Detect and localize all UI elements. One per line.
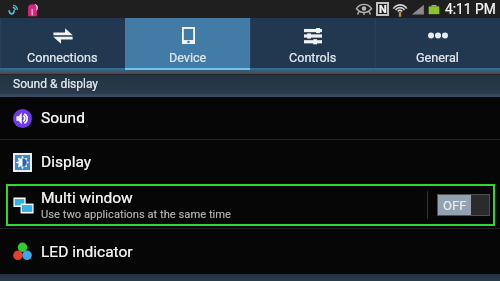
button[interactable]: Multi window [6,184,495,226]
staticText: Sound [41,109,85,127]
button[interactable]: Display [0,140,500,184]
staticText: General [416,50,459,65]
staticText: Connections [27,50,98,65]
staticText: OFF [443,198,467,213]
other: Controls tab [303,27,323,44]
button[interactable]: General tab [375,18,500,68]
staticText: Sound & display [13,77,99,91]
button[interactable]: Multi window off [437,194,490,216]
staticText: N [379,3,387,16]
button[interactable]: Device tab [125,18,250,68]
staticText: Display [41,153,92,171]
staticText: Multi window [41,189,133,207]
staticText: LED indicator [41,243,133,261]
other: General tab [428,27,448,44]
other: Connections tab [53,27,73,44]
other: Device tab [178,27,198,44]
button[interactable]: Controls tab [250,18,375,68]
button[interactable]: Connections tab [0,18,125,68]
button[interactable]: Sound [0,97,500,139]
staticText: Use two applications at the same time [41,208,232,221]
staticText: Controls [289,50,337,65]
button[interactable]: LED indicator [0,229,500,274]
staticText: 4:11 PM [445,1,496,17]
staticText: Device [169,50,207,65]
